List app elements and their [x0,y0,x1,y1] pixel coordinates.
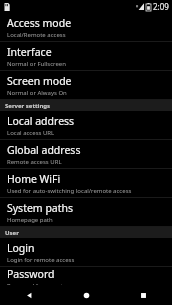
staticText: Local access URL [7,129,55,137]
button[interactable]: Screen mode [0,71,172,100]
button[interactable]: Access mode [0,13,172,42]
staticText: System paths [7,201,74,215]
staticText: User [5,229,19,237]
staticText: Normal or Always On [7,89,67,97]
staticText: Home WiFi [7,172,61,186]
staticText: Login [7,241,35,255]
button[interactable]: Home WiFi [0,169,172,198]
staticText: Access mode [7,16,72,30]
button[interactable]: Local address [0,111,172,140]
button[interactable]: Interface [0,42,172,71]
staticText: Password [7,267,55,281]
staticText: Interface [7,45,52,59]
button[interactable]: Back [0,285,58,305]
staticText: Normal or Fullscreen [7,60,66,68]
button[interactable]: Recent apps [115,285,172,305]
staticText: Local address [7,114,75,128]
staticText: Screen mode [7,74,72,88]
button[interactable]: Global address [0,140,172,169]
staticText: Remote access URL [7,158,62,166]
staticText: Server settings [5,102,51,110]
staticText: Local/Remote access [7,31,66,39]
button[interactable]: Password [0,267,172,285]
staticText: Password for remote access [7,282,86,285]
button[interactable]: Home [58,285,115,305]
button[interactable]: Login [0,238,172,267]
staticText: Login for remote access [7,256,75,264]
staticText: Global address [7,143,81,157]
staticText: Homepage path [7,216,53,224]
staticText: Used for auto-switching local/remote acc… [7,187,132,195]
button[interactable]: System paths [0,198,172,227]
staticText: 2:09 [153,1,169,12]
